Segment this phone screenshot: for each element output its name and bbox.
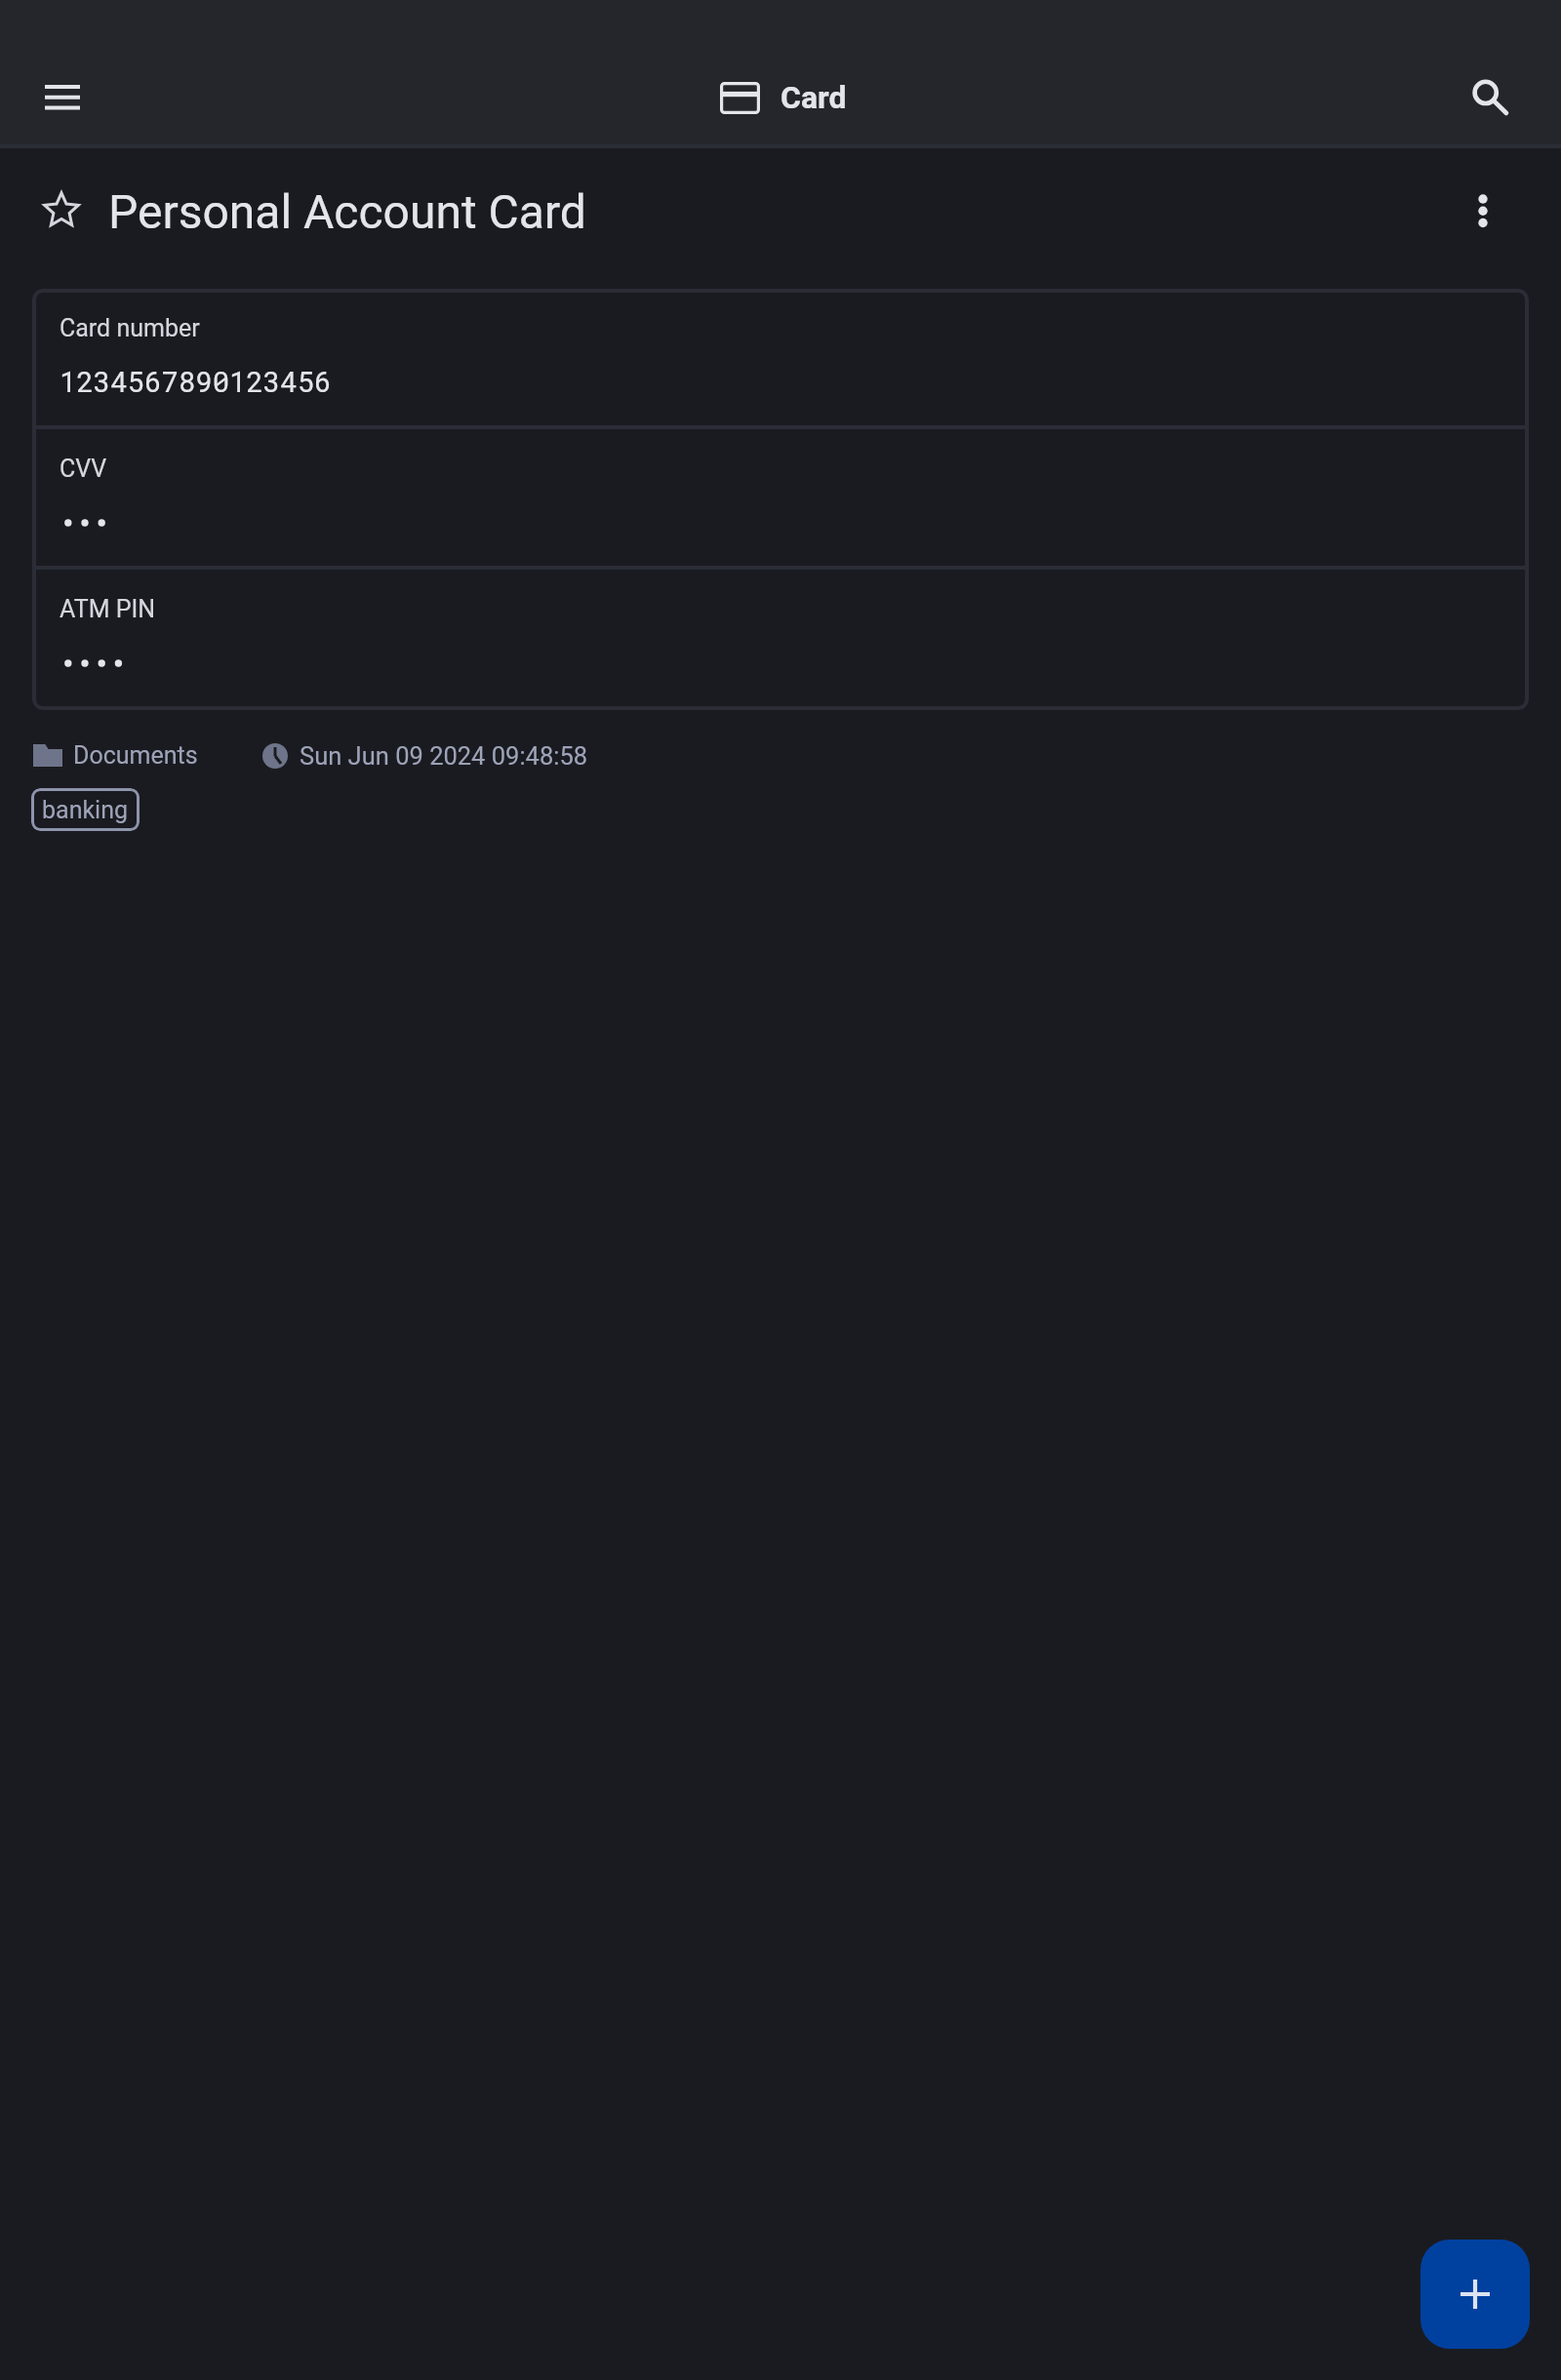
- button[interactable]: Add new item: [1421, 2240, 1530, 2349]
- staticText: 1234567890123456: [60, 363, 332, 400]
- button[interactable]: Open navigation menu: [18, 61, 107, 134]
- button[interactable]: More options: [1444, 170, 1530, 256]
- button[interactable]: banking: [31, 788, 140, 831]
- staticText: Sun Jun 09 2024 09:48:58: [300, 741, 588, 771]
- staticText: Card number: [60, 314, 200, 342]
- staticText: Personal Account Card: [108, 184, 586, 239]
- staticText: banking: [42, 796, 129, 824]
- button[interactable]: Card number: [32, 289, 1529, 425]
- staticText: Card: [780, 79, 847, 116]
- staticText: CVV: [60, 455, 107, 483]
- button[interactable]: Add to favourites: [26, 175, 97, 245]
- button[interactable]: CVV: [32, 429, 1529, 566]
- button[interactable]: ATM PIN: [32, 570, 1529, 706]
- button[interactable]: Search: [1454, 61, 1538, 134]
- staticText: Documents: [73, 741, 198, 770]
- staticText: ATM PIN: [60, 595, 156, 623]
- button[interactable]: Personal Account Card: [105, 170, 593, 267]
